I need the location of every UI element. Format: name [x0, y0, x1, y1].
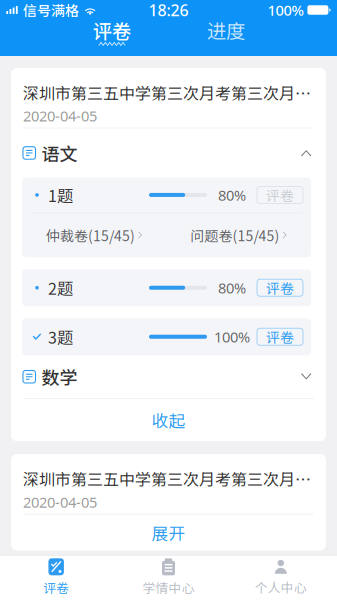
staticText: 深圳市第三五中学第三次月考第三次月考第次... [23, 81, 316, 104]
staticText: 2020-04-05 [23, 106, 97, 126]
button[interactable]: 评卷 [257, 328, 303, 345]
button[interactable]: 评卷 [257, 279, 303, 296]
staticText: 100% [214, 327, 250, 346]
staticText: 收起 [151, 408, 185, 432]
button[interactable]: 问题卷(15/45) [190, 225, 287, 245]
button[interactable]: 语文 [11, 128, 326, 177]
staticText: 评卷 [43, 578, 69, 597]
staticText: 2020-04-05 [23, 492, 97, 512]
button[interactable]: 个人中心 [225, 554, 337, 600]
staticText: 评卷 [266, 327, 294, 347]
staticText: 仲裁卷(15/45) [46, 225, 135, 245]
staticText: 深圳市第三五中学第三次月考第三次月考第次... [23, 467, 316, 490]
button[interactable]: 展开 [11, 514, 326, 550]
staticText: 80% [218, 185, 246, 205]
staticText: 评卷 [266, 278, 294, 298]
staticText: 评卷 [266, 185, 294, 205]
button[interactable]: 收起 [11, 399, 326, 441]
button[interactable]: 评卷 [0, 554, 112, 600]
button[interactable]: 进度 [198, 20, 254, 56]
staticText: 100% [267, 0, 303, 20]
staticText: 数学 [41, 364, 77, 390]
staticText: 语文 [41, 140, 77, 166]
staticText: 问题卷(15/45) [190, 225, 279, 245]
staticText: 进度 [207, 16, 245, 44]
staticText: 3题 [48, 325, 73, 348]
staticText: 展开 [151, 520, 185, 544]
staticText: 学情中心 [142, 578, 194, 597]
button[interactable]: 评卷 [84, 20, 140, 56]
button[interactable]: 数学 [11, 355, 326, 398]
staticText: 个人中心 [255, 578, 307, 596]
staticText: 80% [218, 278, 246, 297]
staticText: 信号满格 [23, 0, 79, 20]
staticText: 评卷 [93, 16, 131, 44]
staticText: 18:26 [148, 0, 188, 21]
button[interactable]: 评卷 [257, 186, 303, 203]
staticText: 2题 [48, 276, 73, 299]
button[interactable]: 仲裁卷(15/45) [46, 225, 142, 245]
button[interactable]: 学情中心 [112, 554, 225, 600]
staticText: 1题 [48, 183, 73, 207]
